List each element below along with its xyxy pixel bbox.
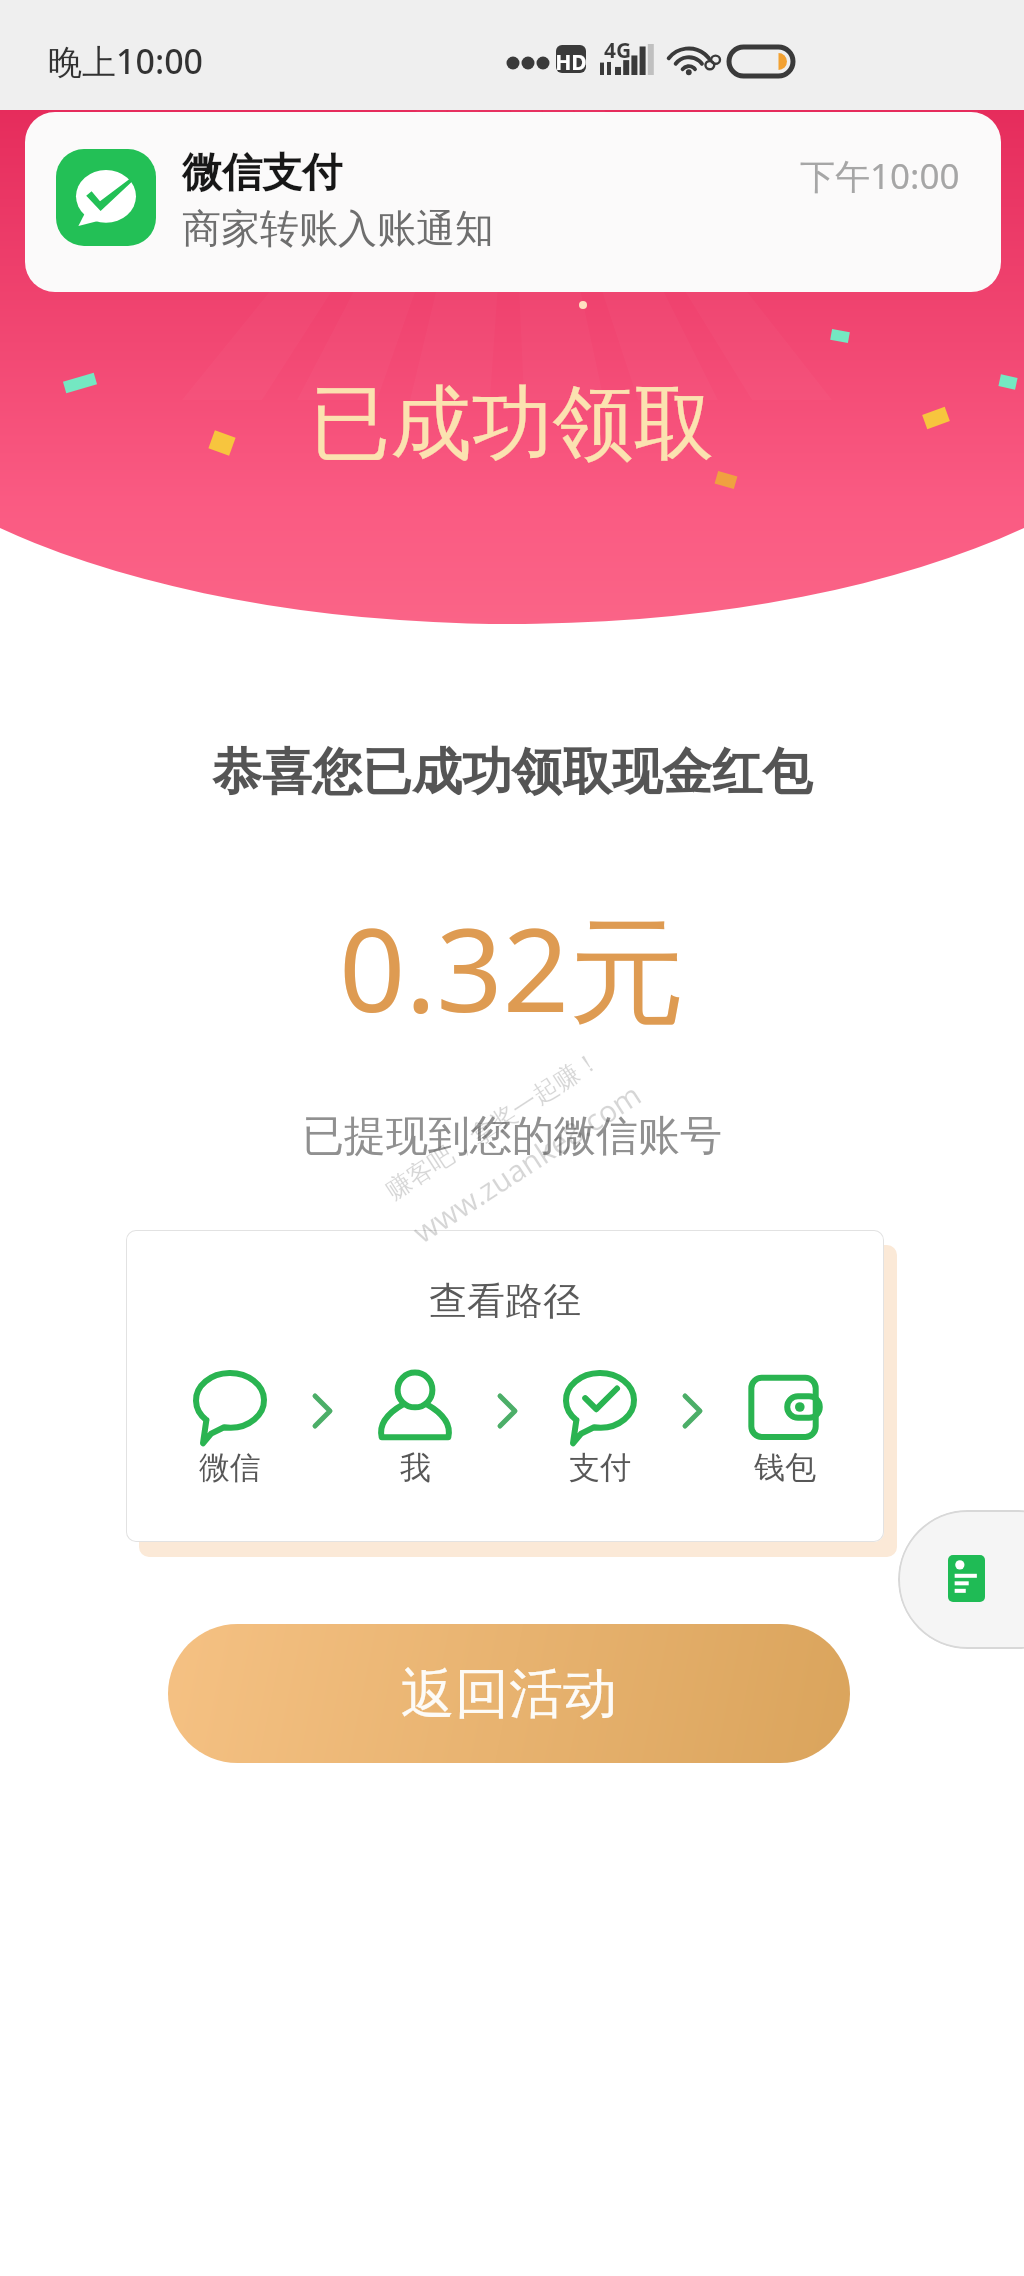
- staticText: 下午10:00: [800, 152, 960, 200]
- staticText: 已成功领取: [0, 373, 1024, 475]
- staticText: 0.32元: [0, 888, 1024, 1046]
- staticText: www.zuanke8.com: [404, 1073, 649, 1252]
- button[interactable]: 微信支付: [25, 112, 1001, 292]
- staticText: 微信支付: [182, 147, 342, 197]
- staticText: 返回活动: [401, 1660, 617, 1728]
- staticText: HD: [548, 48, 594, 77]
- button[interactable]: 问卷: [898, 1510, 1024, 1649]
- staticText: 钱包: [754, 1448, 816, 1487]
- button[interactable]: 查看路径: [126, 1230, 884, 1542]
- staticText: 商家转账入账通知: [182, 204, 494, 253]
- staticText: 赚客吧，拿奖一起赚！: [380, 1044, 607, 1206]
- staticText: 我: [400, 1448, 431, 1487]
- staticText: 4G: [604, 36, 632, 65]
- staticText: 恭喜您已成功领取现金红包: [0, 741, 1024, 804]
- staticText: 晚上10:00: [48, 38, 204, 84]
- staticText: 微信: [199, 1448, 261, 1487]
- staticText: 支付: [569, 1448, 631, 1487]
- staticText: 查看路径: [126, 1277, 884, 1325]
- button[interactable]: 返回活动: [168, 1624, 850, 1763]
- staticText: 已提现到您的微信账号: [0, 1110, 1024, 1163]
